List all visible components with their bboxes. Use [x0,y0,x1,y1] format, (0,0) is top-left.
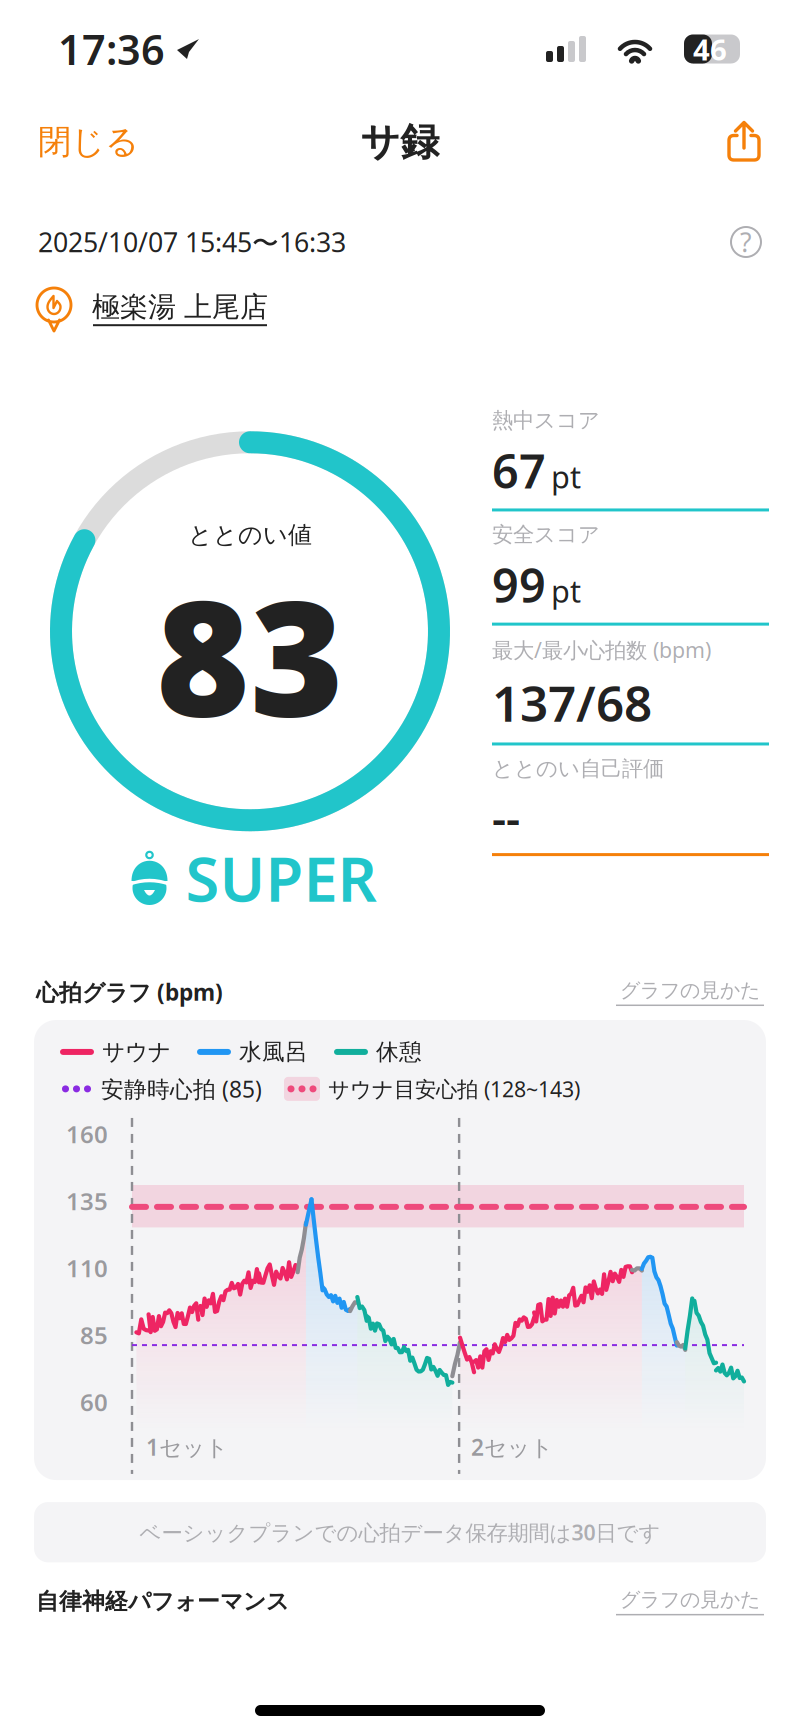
staticText: グラフの見かた [620,1587,760,1612]
button[interactable]: グラフの見かた [616,1587,764,1615]
staticText: 67 [492,439,546,501]
staticText: 2025/10/07 15:45〜16:33 [38,224,346,260]
staticText: 160 [66,1118,108,1150]
staticText: 心拍グラフ (bpm) [36,977,223,1007]
staticText: サウナ目安心拍 (128~143) [328,1075,580,1103]
staticText: 水風呂 [239,1038,308,1066]
staticText: 137/68 [492,670,652,735]
staticText: 休憩 [376,1038,422,1066]
button[interactable]: 極楽湯 上尾店 [92,290,268,326]
button[interactable]: 閉じる [34,111,143,172]
staticText: 85 [80,1319,108,1351]
staticText: ととのい自己評価 [492,755,664,782]
staticText: サ録 [360,118,439,166]
staticText: 自律神経パフォーマンス [36,1587,289,1615]
staticText: 安全スコア [492,521,600,548]
staticText: 安静時心拍 (85) [101,1074,262,1104]
staticText: 最大/最小心拍数 (bpm) [492,636,711,664]
staticText: ととのい値 [188,520,312,550]
staticText: 極楽湯 上尾店 [92,290,268,324]
staticText: 17:36 [58,22,165,76]
button[interactable]: グラフの見かた [616,978,764,1006]
staticText: ? [740,224,752,260]
staticText: SUPER [185,837,376,919]
staticText: 83 [156,548,344,760]
staticText: pt [551,456,581,497]
staticText: 2セット [471,1432,553,1462]
staticText: 閉じる [38,121,139,162]
staticText: 1セット [146,1432,228,1462]
staticText: ベーシックプランでの心拍データ保存期間は30日です [139,1518,660,1546]
button[interactable]: 共有 [722,117,766,167]
button[interactable]: ヘルプ [730,226,762,258]
staticText: 熱中スコア [492,407,600,433]
staticText: pt [551,570,581,611]
staticText: サウナ [102,1038,171,1066]
staticText: 135 [66,1185,108,1217]
staticText: 46 [693,29,727,68]
staticText: 99 [492,554,546,616]
staticText: グラフの見かた [620,978,760,1003]
staticText: -- [492,788,520,846]
staticText: 60 [80,1386,108,1418]
staticText: 110 [66,1252,108,1284]
